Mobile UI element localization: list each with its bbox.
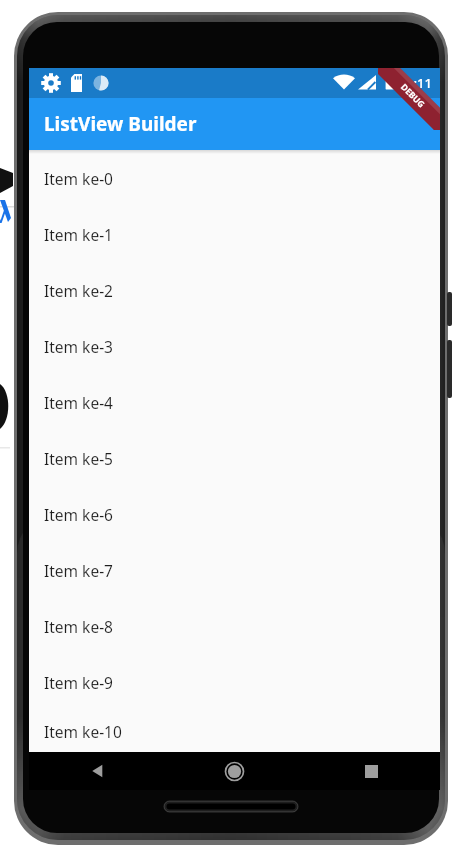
button[interactable]: Item ke-8 [29, 598, 440, 654]
staticText: Item ke-10 [44, 721, 122, 742]
staticText: Item ke-3 [44, 336, 113, 357]
button[interactable]: Back [29, 752, 166, 790]
staticText: Item ke-7 [44, 560, 113, 581]
button[interactable]: Item ke-1 [29, 206, 440, 262]
staticText: DEBUG [398, 81, 428, 111]
staticText: Item ke-5 [44, 448, 113, 469]
button[interactable]: Item ke-10 [29, 710, 440, 752]
staticText: Item ke-2 [44, 280, 113, 301]
button[interactable]: Item ke-0 [29, 150, 440, 206]
staticText: 1:11 [406, 74, 432, 92]
button[interactable]: Item ke-7 [29, 542, 440, 598]
button[interactable]: Item ke-2 [29, 262, 440, 318]
staticText: Item ke-6 [44, 504, 113, 525]
staticText: Item ke-8 [44, 616, 113, 637]
button[interactable]: Item ke-9 [29, 654, 440, 710]
staticText: Item ke-9 [44, 672, 113, 693]
staticText: Item ke-4 [44, 392, 113, 413]
staticText: Item ke-0 [44, 168, 113, 189]
button[interactable]: Recent apps [303, 752, 440, 790]
button[interactable]: Home [166, 752, 303, 790]
button[interactable]: Item ke-5 [29, 430, 440, 486]
button[interactable]: Item ke-3 [29, 318, 440, 374]
staticText: Item ke-1 [44, 224, 113, 245]
staticText: V [0, 199, 8, 229]
staticText: ListView Builder [44, 111, 197, 137]
button[interactable]: Item ke-6 [29, 486, 440, 542]
button[interactable]: Item ke-4 [29, 374, 440, 430]
